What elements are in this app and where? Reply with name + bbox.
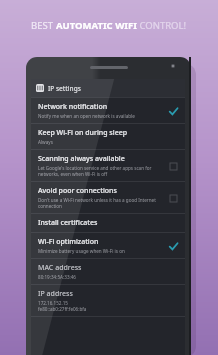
button[interactable]: Scanning always available — [31, 149, 185, 181]
staticText: Avoid poor connections — [38, 186, 117, 196]
staticText: Minimize battery usage when Wi-Fi is on — [38, 248, 125, 254]
button[interactable]: IP settings icon — [31, 79, 185, 97]
staticText: 172.16.152.15 fe80::ab0:27ff:fe06:bfa — [38, 300, 87, 312]
staticText: IP settings — [48, 84, 81, 93]
staticText: Keep Wi-Fi on during sleep — [38, 128, 128, 138]
staticText: Network notification — [38, 102, 108, 112]
staticText: CONTROL! — [137, 19, 187, 32]
button[interactable]: Enabled — [167, 105, 179, 117]
button[interactable]: IP address — [31, 284, 185, 316]
staticText: Install certificates — [38, 218, 98, 228]
button[interactable]: Network notification — [31, 97, 185, 123]
button[interactable]: MAC address — [31, 258, 185, 284]
button[interactable]: Keep Wi-Fi on during sleep — [31, 123, 185, 149]
staticText: Let Google's location service and other … — [38, 165, 152, 177]
staticText: Notify me when an open network is availa… — [38, 113, 135, 119]
staticText: Don't use a Wi-Fi network unless it has … — [38, 197, 156, 209]
staticText: Wi-Fi optimization — [38, 237, 99, 247]
button[interactable]: Avoid poor connections — [31, 181, 185, 213]
staticText: MAC address — [38, 263, 82, 273]
other: IP settings icon — [36, 84, 44, 92]
staticText: BEST — [31, 19, 56, 32]
button[interactable]: Enabled — [167, 240, 179, 252]
staticText: AUTOMATIC WIFI — [56, 19, 137, 32]
button[interactable]: Disabled — [167, 192, 179, 204]
staticText: Always — [38, 139, 53, 145]
staticText: Scanning always available — [38, 154, 125, 164]
button[interactable]: Disabled — [167, 160, 179, 172]
staticText: IP address — [38, 289, 73, 299]
button[interactable]: Install certificates — [31, 213, 185, 232]
staticText: 80:19:34:5A:33:46 — [38, 274, 76, 280]
button[interactable]: Wi-Fi optimization — [31, 232, 185, 258]
